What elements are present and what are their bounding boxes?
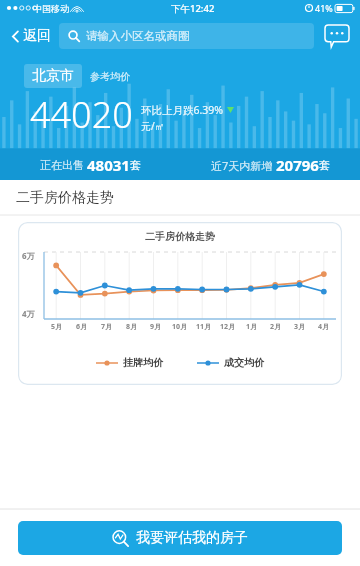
button[interactable]: 正在出售 xyxy=(0,155,180,175)
button[interactable]: 近7天内新增 xyxy=(180,155,360,175)
staticText: 我要评估我的房子 xyxy=(136,529,248,547)
staticText: 中国移动 xyxy=(33,3,69,14)
staticText: 成交均价 xyxy=(224,356,264,369)
staticText: 二手房价格走势 xyxy=(16,189,114,207)
button[interactable]: 我要评估我的房子 xyxy=(18,521,342,555)
staticText: 参考均价 xyxy=(90,70,130,83)
staticText: 5月 xyxy=(51,322,63,332)
button[interactable]: 挂牌均价 xyxy=(96,356,163,369)
staticText: 9月 xyxy=(150,322,162,332)
button[interactable]: Messages xyxy=(322,22,352,50)
staticText: 北京市 xyxy=(32,67,74,85)
staticText: 6月 xyxy=(76,322,88,332)
staticText: 二手房价格走势 xyxy=(145,230,215,243)
staticText: 20796 xyxy=(276,155,319,175)
staticText: 2月 xyxy=(270,322,282,332)
button[interactable]: 请输入小区名或商圈 xyxy=(59,23,314,49)
staticText: 7月 xyxy=(101,322,113,332)
staticText: 正在出售 xyxy=(40,158,84,172)
staticText: 44020 xyxy=(30,90,133,139)
staticText: 环比上月跌6.39% xyxy=(141,103,224,117)
staticText: 下午12:42 xyxy=(171,2,215,15)
button[interactable]: 返回 xyxy=(8,23,53,49)
staticText: 挂牌均价 xyxy=(123,356,163,369)
button[interactable]: 成交均价 xyxy=(197,356,264,369)
staticText: 4万 xyxy=(22,308,35,319)
staticText: 48031 xyxy=(87,155,130,175)
staticText: 近7天内新增 xyxy=(211,158,273,173)
staticText: 4月 xyxy=(318,322,330,332)
staticText: 套 xyxy=(319,158,330,172)
staticText: 返回 xyxy=(23,27,51,45)
staticText: 11月 xyxy=(196,322,212,332)
staticText: 套 xyxy=(130,158,141,172)
staticText: 6万 xyxy=(22,250,35,261)
staticText: 10月 xyxy=(172,322,188,332)
staticText: 12月 xyxy=(220,322,236,332)
staticText: 41% xyxy=(315,2,333,14)
staticText: 元/㎡ xyxy=(141,119,165,133)
staticText: 8月 xyxy=(126,322,138,332)
staticText: 1月 xyxy=(246,322,258,332)
staticText: 3月 xyxy=(294,322,306,332)
staticText: 请输入小区名或商圈 xyxy=(86,29,190,43)
button[interactable]: 北京市 xyxy=(24,64,82,88)
